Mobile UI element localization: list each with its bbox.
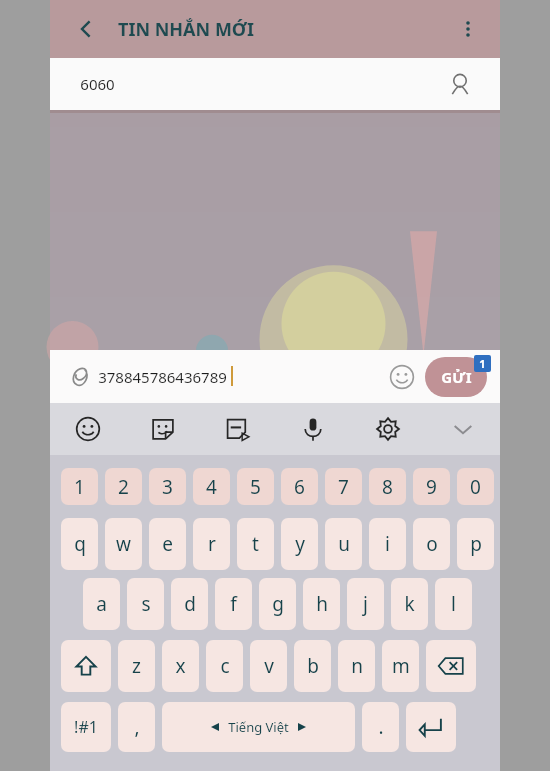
button[interactable]: Back (66, 9, 106, 49)
staticText: z (132, 653, 141, 679)
button[interactable]: 5 (237, 468, 274, 505)
staticText: 5 (250, 474, 261, 500)
staticText: r (208, 531, 216, 557)
staticText: t (252, 531, 259, 557)
staticText: !#1 (74, 716, 98, 738)
button[interactable]: GỬI (425, 357, 487, 397)
button[interactable]: y (281, 518, 318, 570)
button[interactable]: a (83, 578, 120, 630)
button[interactable]: Enter (406, 702, 456, 752)
staticText: x (175, 653, 186, 679)
button[interactable]: 1 (61, 468, 98, 505)
staticText: o (426, 531, 438, 557)
staticText: y (295, 531, 305, 557)
button[interactable]: Emoji (50, 403, 125, 455)
staticText: q (74, 531, 86, 557)
button[interactable]: 6 (281, 468, 318, 505)
button[interactable]: 0 (457, 468, 494, 505)
button[interactable]: 4 (193, 468, 230, 505)
button[interactable]: , (118, 702, 155, 752)
staticText: a (96, 591, 107, 617)
button[interactable]: o (413, 518, 450, 570)
button[interactable]: j (347, 578, 384, 630)
staticText: 1 (74, 474, 85, 500)
staticText: i (385, 531, 390, 557)
button[interactable]: d (171, 578, 208, 630)
button[interactable]: Emoji (385, 360, 419, 394)
button[interactable]: !#1 (61, 702, 111, 752)
staticText: l (451, 591, 456, 617)
button[interactable]: t (237, 518, 274, 570)
staticText: n (351, 653, 363, 679)
button[interactable]: 8 (369, 468, 406, 505)
button[interactable]: x (162, 640, 199, 692)
button[interactable]: Hide keyboard (425, 403, 500, 455)
button[interactable]: h (303, 578, 340, 630)
staticText: 2 (118, 474, 129, 500)
button[interactable]: i (369, 518, 406, 570)
staticText: 7 (338, 474, 349, 500)
staticText: 0 (470, 474, 481, 500)
button[interactable]: More options (448, 9, 488, 49)
staticText: TIN NHẮN MỚI (118, 17, 254, 42)
staticText: , (134, 714, 140, 740)
button[interactable]: z (118, 640, 155, 692)
staticText: 378845786436789 (98, 367, 227, 387)
button[interactable]: . (362, 702, 399, 752)
button[interactable]: n (338, 640, 375, 692)
button[interactable]: r (193, 518, 230, 570)
button[interactable]: Keyboard settings (350, 403, 425, 455)
staticText: j (363, 591, 368, 617)
button[interactable]: c (206, 640, 243, 692)
staticText: e (162, 531, 173, 557)
button[interactable]: 3 (149, 468, 186, 505)
button[interactable]: w (105, 518, 142, 570)
button[interactable]: k (391, 578, 428, 630)
staticText: c (220, 653, 230, 679)
button[interactable]: m (382, 640, 419, 692)
button[interactable]: 7 (325, 468, 362, 505)
button[interactable]: Backspace (426, 640, 476, 692)
button[interactable]: e (149, 518, 186, 570)
button[interactable]: g (259, 578, 296, 630)
staticText: h (316, 591, 328, 617)
button[interactable]: u (325, 518, 362, 570)
button[interactable]: Sticker (125, 403, 200, 455)
button[interactable]: v (250, 640, 287, 692)
button[interactable]: GIF (200, 403, 275, 455)
staticText: . (378, 714, 384, 740)
staticText: k (404, 591, 415, 617)
button[interactable]: p (457, 518, 494, 570)
button[interactable]: Add recipient (444, 68, 476, 100)
staticText: m (392, 653, 410, 679)
staticText: 6060 (80, 74, 115, 94)
staticText: f (230, 591, 237, 617)
staticText: Tiếng Việt (228, 718, 289, 736)
button[interactable]: Voice input (275, 403, 350, 455)
staticText: g (272, 591, 284, 617)
button[interactable]: 9 (413, 468, 450, 505)
staticText: u (338, 531, 350, 557)
staticText: 6 (294, 474, 305, 500)
button[interactable]: Shift (61, 640, 111, 692)
staticText: b (307, 653, 319, 679)
staticText: d (184, 591, 196, 617)
button[interactable]: 2 (105, 468, 142, 505)
staticText: w (116, 531, 131, 557)
staticText: 3 (162, 474, 173, 500)
staticText: 4 (206, 474, 217, 500)
button[interactable]: 6060 (50, 58, 500, 110)
staticText: GỬI (441, 367, 472, 387)
button[interactable]: f (215, 578, 252, 630)
button[interactable]: q (61, 518, 98, 570)
button[interactable]: Space (162, 702, 355, 752)
staticText: 9 (426, 474, 437, 500)
button[interactable]: Attach (60, 358, 98, 396)
staticText: v (264, 653, 274, 679)
staticText: 8 (382, 474, 393, 500)
button[interactable]: s (127, 578, 164, 630)
staticText: 1 (479, 356, 486, 371)
staticText: s (141, 591, 151, 617)
button[interactable]: l (435, 578, 472, 630)
button[interactable]: b (294, 640, 331, 692)
